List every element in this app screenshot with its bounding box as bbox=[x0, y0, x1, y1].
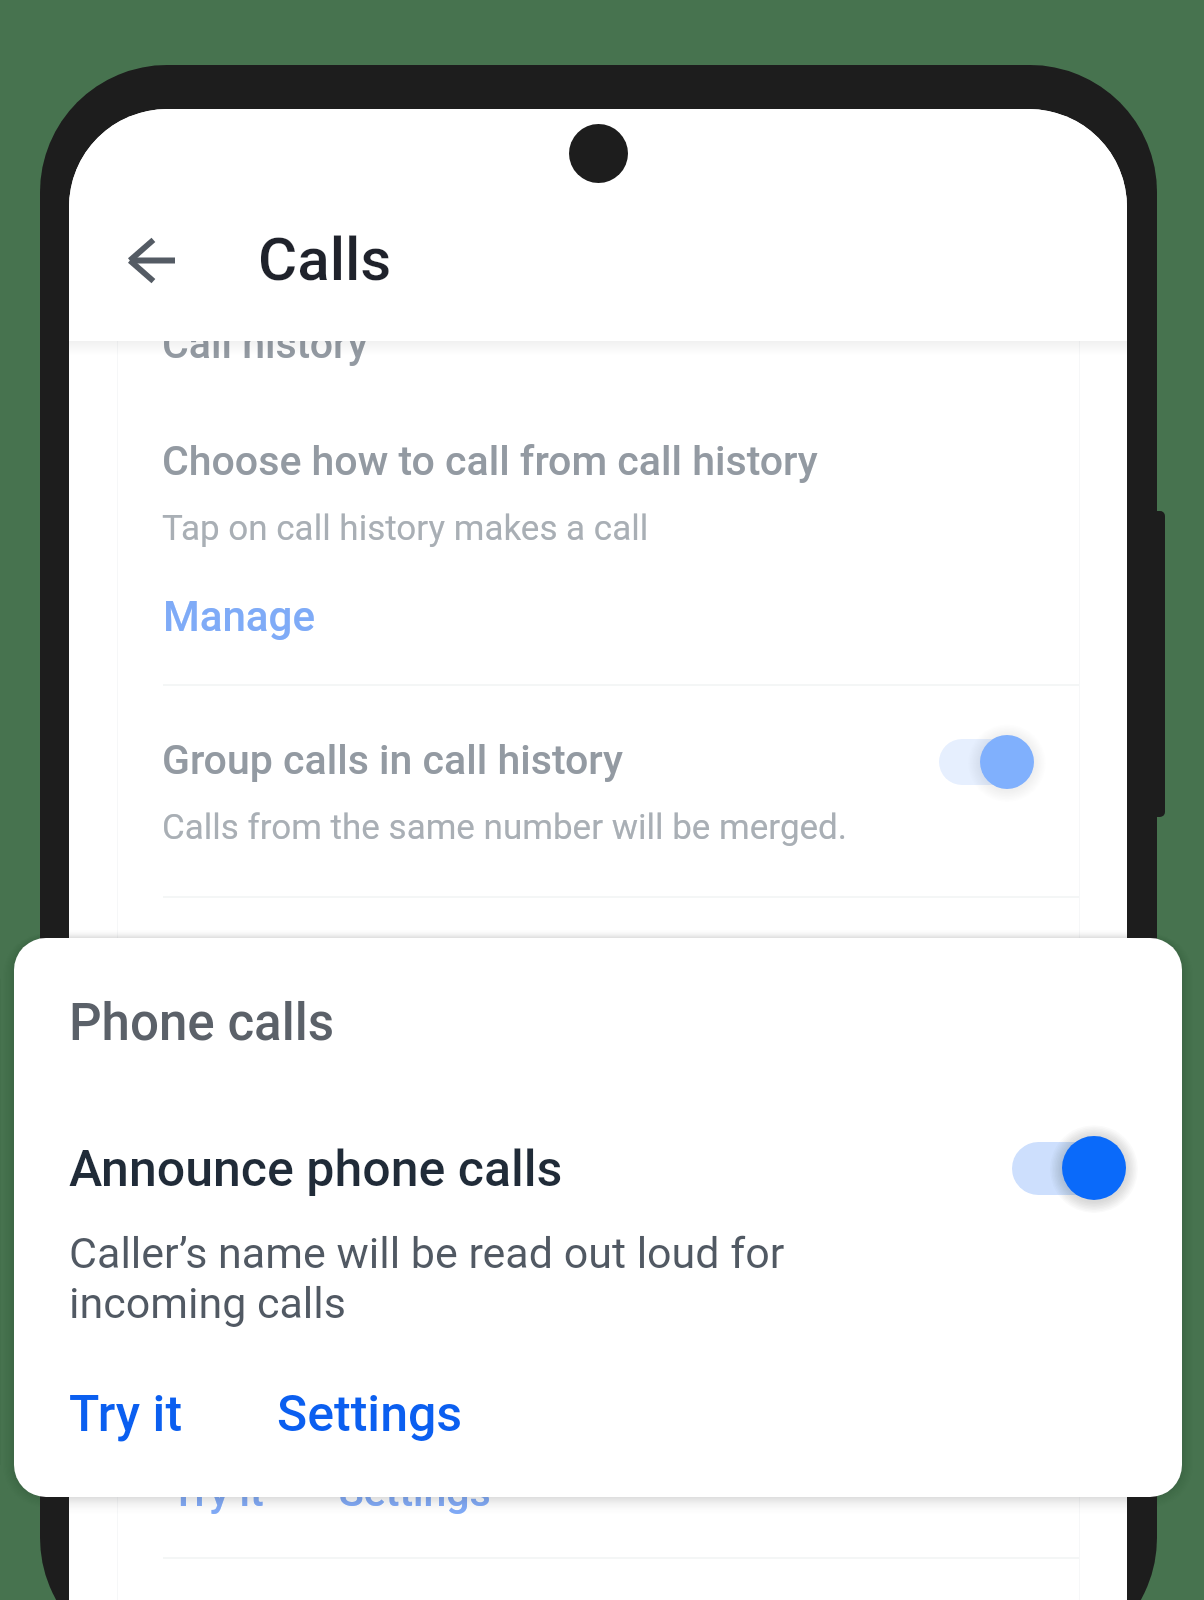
button[interactable]: Announce phone calls toggle bbox=[1012, 1136, 1126, 1200]
button[interactable]: Settings bbox=[261, 1369, 479, 1460]
staticText: Call history bbox=[162, 320, 368, 368]
staticText: Group calls in call history bbox=[162, 736, 624, 784]
staticText: Try it bbox=[69, 1385, 183, 1444]
staticText: Settings bbox=[277, 1385, 463, 1444]
staticText: Choose how to call from call history bbox=[162, 437, 818, 485]
button[interactable]: Try it bbox=[53, 1369, 199, 1460]
staticText: Phone calls bbox=[69, 993, 335, 1053]
staticText: Caller’s name will be read out loud for … bbox=[69, 1228, 829, 1328]
staticText: Manage bbox=[163, 592, 315, 641]
staticText: Tap on call history makes a call bbox=[162, 508, 649, 549]
staticText: Calls bbox=[258, 224, 392, 294]
button[interactable]: Back bbox=[101, 210, 201, 310]
staticText: Settings bbox=[339, 1468, 491, 1516]
staticText: Calls from the same number will be merge… bbox=[162, 807, 848, 848]
staticText: Announce phone calls bbox=[69, 1140, 563, 1199]
staticText: Try it bbox=[171, 1468, 264, 1516]
